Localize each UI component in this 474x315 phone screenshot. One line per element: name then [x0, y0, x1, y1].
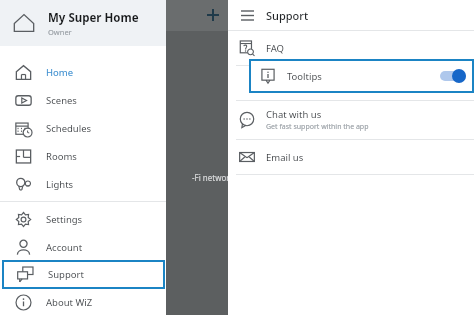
staticText: Chat with us — [266, 108, 322, 121]
button[interactable]: Add — [202, 4, 224, 26]
button[interactable]: Schedules — [0, 114, 166, 142]
button[interactable]: Open navigation menu — [228, 0, 266, 30]
button[interactable]: FAQ — [228, 31, 474, 65]
staticText: FAQ — [266, 42, 285, 55]
button[interactable]: My Super Home — [0, 0, 166, 46]
button[interactable]: Tooltips — [249, 59, 474, 93]
button[interactable]: About WiZ — [0, 289, 166, 315]
button[interactable]: Email us — [228, 140, 474, 174]
staticText: Rooms — [46, 150, 77, 163]
staticText: Account — [46, 241, 83, 254]
staticText: -Fi network. — [192, 172, 237, 183]
button[interactable]: Chat with us — [228, 101, 474, 139]
button[interactable]: Account — [0, 233, 166, 261]
staticText: Scenes — [46, 94, 77, 107]
staticText: Support — [48, 268, 84, 281]
staticText: Settings — [46, 213, 83, 226]
button[interactable]: Lights — [0, 170, 166, 198]
button[interactable]: Support — [2, 260, 165, 289]
staticText: My Super Home — [48, 10, 139, 26]
staticText: About WiZ — [46, 296, 93, 309]
button[interactable]: Settings — [0, 205, 166, 233]
button[interactable]: Tooltips toggle, on — [440, 69, 466, 83]
staticText: Tooltips — [287, 70, 322, 83]
staticText: Support — [266, 8, 309, 23]
staticText: Home — [46, 66, 74, 79]
staticText: Owner — [48, 27, 72, 37]
staticText: Email us — [266, 151, 304, 164]
staticText: Lights — [46, 178, 74, 191]
button[interactable]: Scenes — [0, 86, 166, 114]
button[interactable]: Home — [0, 58, 166, 86]
staticText: Get fast support within the app — [266, 122, 369, 132]
staticText: Schedules — [46, 122, 92, 135]
button[interactable]: Rooms — [0, 142, 166, 170]
